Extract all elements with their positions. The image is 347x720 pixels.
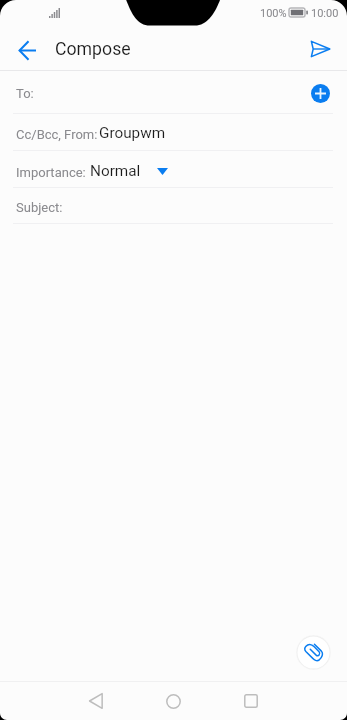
button[interactable]: Back xyxy=(6,25,48,71)
button[interactable]: Attach file xyxy=(296,635,331,670)
staticText: Normal xyxy=(90,162,141,180)
staticText: 10:00 xyxy=(311,7,339,20)
button[interactable]: Home xyxy=(154,682,192,720)
staticText: Importance: xyxy=(16,165,86,180)
button[interactable]: Change importance xyxy=(148,159,176,183)
button[interactable]: Add recipient xyxy=(311,84,330,103)
button[interactable]: Send xyxy=(299,25,341,71)
staticText: Cc/Bcc, From: xyxy=(16,127,98,142)
staticText: Compose xyxy=(55,39,131,60)
button[interactable]: Recents xyxy=(232,682,270,720)
staticText: Subject: xyxy=(16,200,63,215)
staticText: Groupwm xyxy=(99,124,166,142)
staticText: 100% xyxy=(260,7,287,20)
staticText: To: xyxy=(16,86,34,101)
button[interactable]: Back xyxy=(77,682,115,720)
